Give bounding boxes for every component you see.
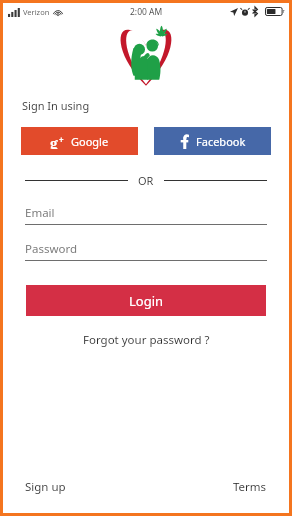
staticText: 2:00 AM bbox=[130, 6, 163, 18]
button[interactable]: Terms bbox=[227, 475, 273, 499]
staticText: Google bbox=[71, 134, 109, 149]
staticText: Email bbox=[25, 205, 55, 221]
staticText: Verizon bbox=[23, 7, 50, 17]
staticText: Login bbox=[129, 292, 164, 310]
staticText: Sign In using bbox=[22, 98, 90, 113]
staticText: Password bbox=[25, 241, 78, 257]
button[interactable]: Password bbox=[25, 238, 267, 261]
button[interactable]: g bbox=[21, 127, 138, 155]
other: App logo bbox=[113, 23, 179, 89]
staticText: g bbox=[50, 134, 58, 149]
staticText: + bbox=[59, 134, 64, 145]
button[interactable]: Facebook bbox=[154, 127, 271, 155]
button[interactable]: Sign up bbox=[19, 475, 72, 499]
button[interactable]: Email bbox=[25, 202, 267, 225]
button[interactable]: Forgot your password ? bbox=[75, 330, 218, 350]
staticText: OR bbox=[138, 173, 154, 188]
button[interactable]: Login bbox=[26, 285, 266, 316]
staticText: Sign up bbox=[25, 479, 66, 495]
staticText: Facebook bbox=[196, 134, 246, 149]
staticText: Forgot your password ? bbox=[83, 332, 210, 348]
staticText: Terms bbox=[233, 479, 267, 495]
